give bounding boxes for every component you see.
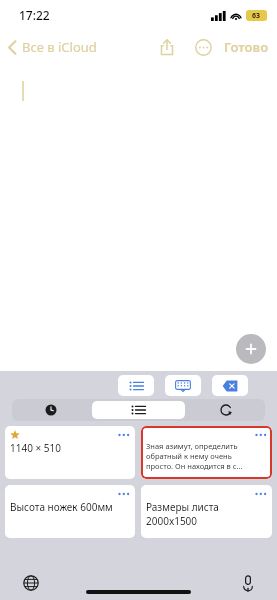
staticText: 2000x1500: [146, 514, 267, 528]
button[interactable]: Share: [154, 34, 180, 60]
button[interactable]: Размеры листа: [141, 485, 272, 538]
staticText: Высота ножек 600мм: [10, 500, 130, 514]
staticText: Готово: [224, 38, 269, 56]
button[interactable]: Dictate: [235, 570, 261, 596]
button[interactable]: Add: [236, 334, 266, 364]
staticText: 1140 × 510: [10, 441, 130, 455]
button[interactable]: More options: [190, 34, 216, 60]
button[interactable]: Change keyboard language: [18, 570, 44, 596]
button[interactable]: Готово: [224, 38, 269, 56]
button[interactable]: Sync: [187, 399, 265, 421]
button[interactable]: Bulleted list: [118, 375, 154, 396]
staticText: Зная азимут, определить: [146, 441, 267, 451]
button[interactable]: Dismiss keyboard: [212, 375, 248, 396]
button[interactable]: Высота ножек 600мм: [5, 485, 135, 538]
button[interactable]: Зная азимут, определить: [141, 426, 272, 479]
staticText: Размеры листа: [146, 500, 267, 514]
staticText: просто. Он находится в с…: [146, 461, 267, 471]
staticText: 63: [252, 11, 261, 21]
button[interactable]: 1140 × 510: [5, 426, 135, 479]
staticText: Все в iCloud: [22, 38, 97, 56]
button[interactable]: Recents: [12, 399, 90, 421]
button[interactable]: Все в iCloud: [8, 38, 97, 56]
staticText: обратный к нему очень: [146, 451, 267, 461]
button[interactable]: Keyboard: [165, 375, 201, 396]
staticText: 17:22: [19, 7, 50, 23]
button[interactable]: All items: [92, 401, 185, 419]
